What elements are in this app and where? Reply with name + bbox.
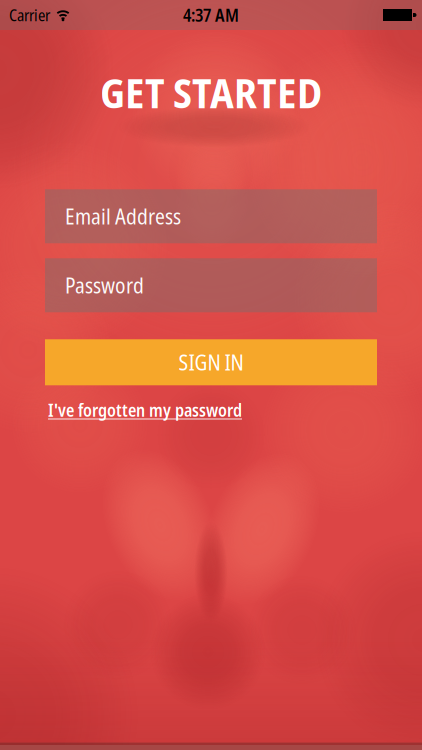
staticText: Password xyxy=(65,271,144,300)
button[interactable]: Email Address xyxy=(45,189,377,243)
staticText: Email Address xyxy=(65,202,181,231)
button[interactable]: SIGN IN xyxy=(45,339,377,385)
staticText: SIGN IN xyxy=(178,348,243,377)
staticText: 4:37 AM xyxy=(183,3,239,27)
button[interactable]: I've forgotten my password xyxy=(48,398,242,422)
button[interactable]: Password xyxy=(45,258,377,312)
staticText: Carrier xyxy=(9,4,50,26)
staticText: I've forgotten my password xyxy=(48,398,242,422)
staticText: GET STARTED xyxy=(100,64,322,120)
